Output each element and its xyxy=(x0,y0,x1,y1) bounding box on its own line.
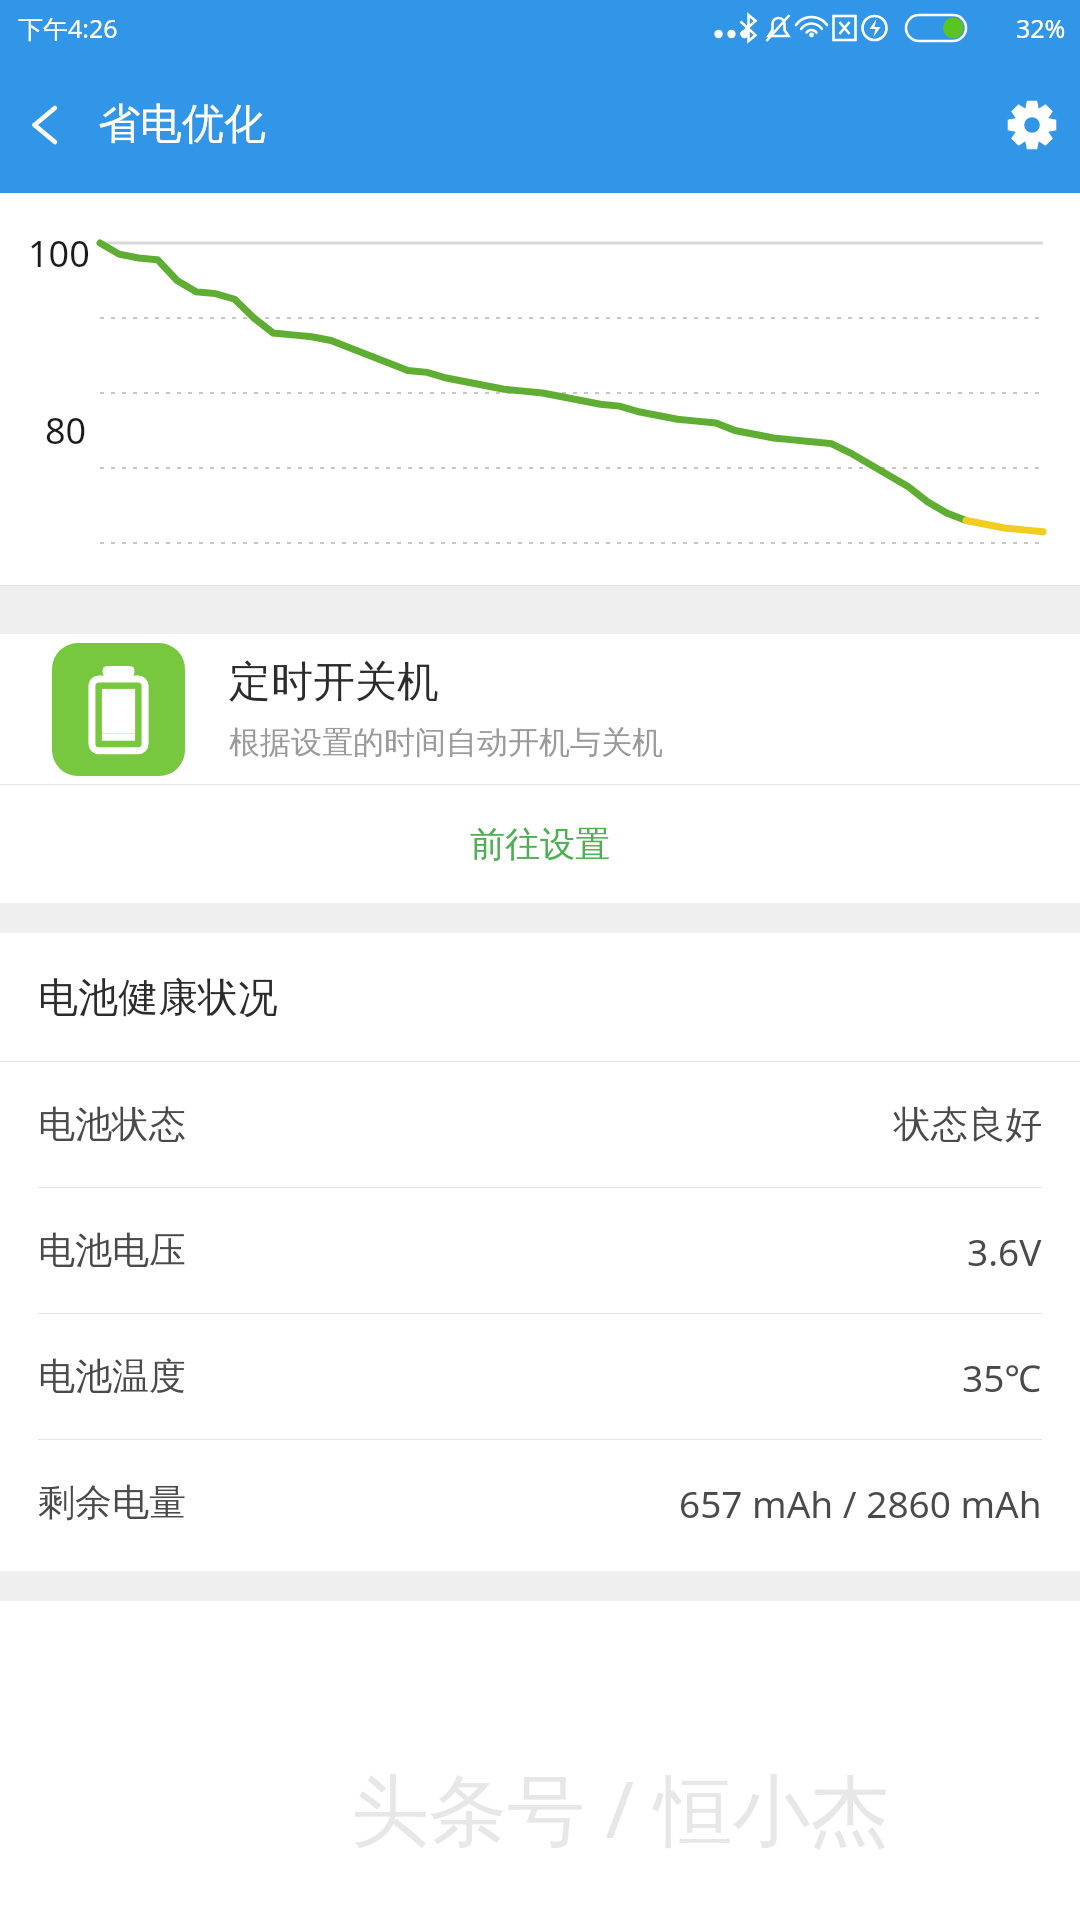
staticText: 下午4:26 xyxy=(18,11,118,45)
staticText: 电池健康状况 xyxy=(38,972,278,1022)
staticText: 根据设置的时间自动开机与关机 xyxy=(229,723,663,762)
staticText: 32% xyxy=(1016,11,1066,45)
staticText: 电池温度 xyxy=(38,1353,186,1400)
button[interactable]: 定时开关机 xyxy=(0,634,1080,784)
staticText: 省电优化 xyxy=(98,98,266,151)
button[interactable]: Settings xyxy=(984,77,1080,173)
button[interactable]: Back xyxy=(0,82,86,168)
staticText: 657 mAh / 2860 mAh xyxy=(679,1478,1042,1528)
button[interactable]: 电池电压 xyxy=(0,1188,1080,1313)
staticText: 头条号 / 恒小杰 xyxy=(351,1755,889,1862)
button[interactable]: 电池状态 xyxy=(0,1062,1080,1187)
button[interactable]: 电池温度 xyxy=(0,1314,1080,1439)
button[interactable]: 前往设置 xyxy=(0,785,1080,903)
staticText: 35℃ xyxy=(962,1352,1042,1402)
staticText: 3.6V xyxy=(967,1226,1042,1276)
staticText: 电池电压 xyxy=(38,1227,186,1274)
staticText: 剩余电量 xyxy=(38,1479,186,1526)
staticText: 状态良好 xyxy=(894,1101,1042,1148)
staticText: 100 xyxy=(28,229,90,278)
staticText: 80 xyxy=(45,406,87,455)
button[interactable]: 剩余电量 xyxy=(0,1440,1080,1565)
staticText: 电池状态 xyxy=(38,1101,186,1148)
staticText: 前往设置 xyxy=(470,822,610,866)
staticText: 定时开关机 xyxy=(229,656,439,709)
